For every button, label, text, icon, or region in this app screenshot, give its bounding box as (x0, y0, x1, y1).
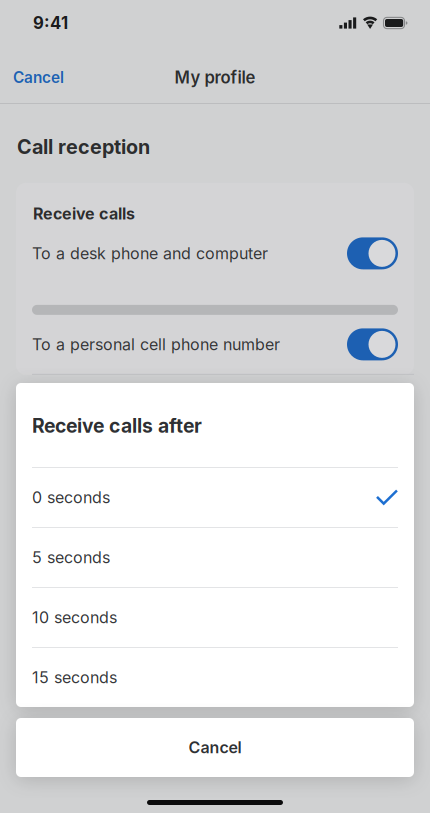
staticText: 15 seconds (32, 668, 117, 687)
staticText: 10 seconds (32, 608, 117, 627)
staticText: Receive calls (33, 204, 135, 223)
button[interactable]: 5 seconds (16, 528, 414, 587)
button[interactable]: Cancel (16, 718, 414, 777)
staticText: 0 seconds (32, 488, 110, 507)
button[interactable]: 15 seconds (16, 648, 414, 707)
staticText: To a desk phone and computer (32, 244, 268, 263)
button[interactable]: To a personal cell phone number (16, 315, 414, 374)
staticText: Receive calls after (32, 414, 202, 437)
button[interactable]: To a desk phone and computer (16, 224, 414, 283)
staticText: 5 seconds (32, 548, 110, 567)
staticText: To a personal cell phone number (32, 335, 280, 354)
staticText: Call reception (17, 135, 150, 159)
button[interactable]: Cancel (0, 55, 77, 99)
staticText: Cancel (13, 68, 64, 87)
button[interactable]: 10 seconds (16, 588, 414, 647)
staticText: Cancel (188, 738, 241, 757)
staticText: My profile (174, 67, 255, 88)
staticText: 9:41 (33, 13, 68, 33)
button[interactable]: 0 seconds (16, 468, 414, 527)
